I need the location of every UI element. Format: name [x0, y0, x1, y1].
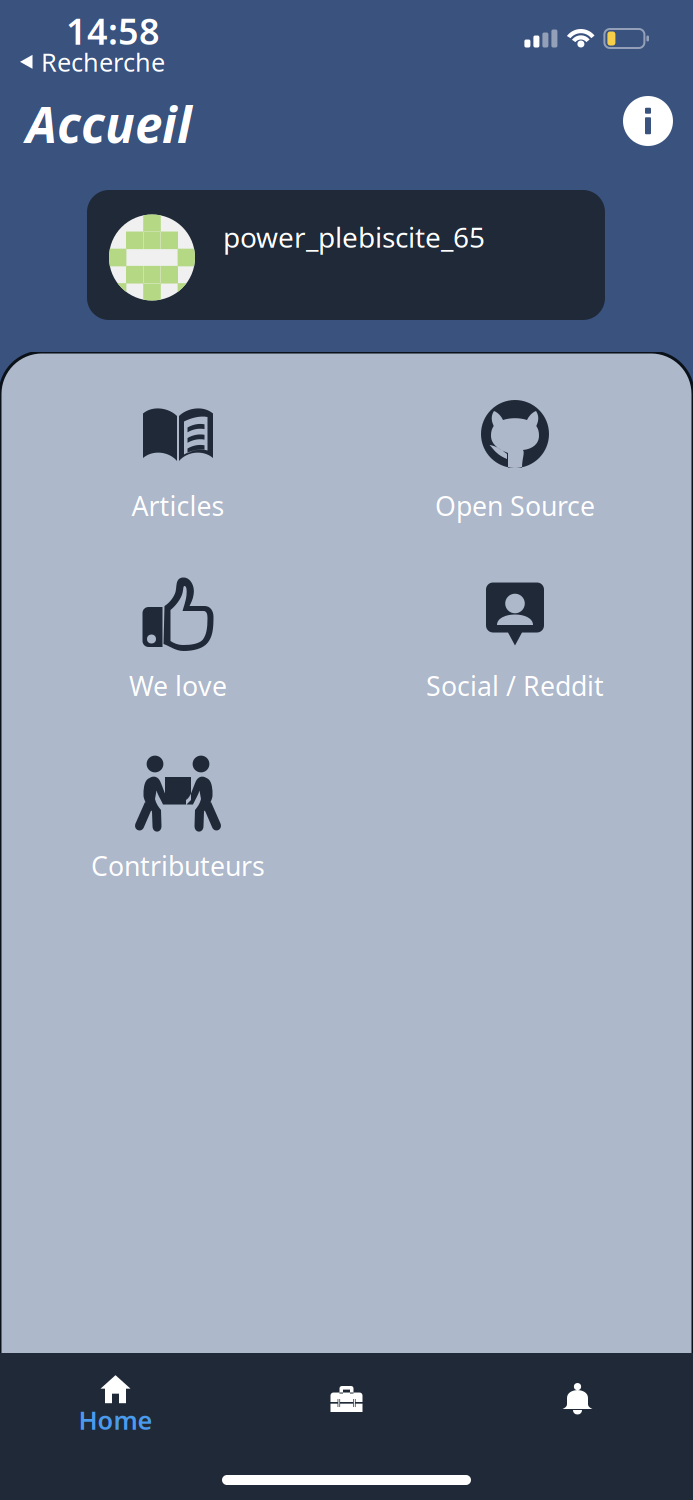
button[interactable]: Social / Reddit	[346, 558, 683, 738]
staticText: Contributeurs	[91, 848, 265, 883]
staticText: Home	[78, 1403, 152, 1437]
button[interactable]: Informations	[617, 90, 679, 152]
button[interactable]: Articles	[9, 378, 346, 558]
staticText: Social / Reddit	[426, 668, 604, 703]
button[interactable]: Home	[0, 1353, 231, 1443]
staticText: We love	[129, 668, 227, 703]
staticText: Recherche	[41, 45, 165, 79]
staticText: Open Source	[435, 488, 595, 523]
button[interactable]: Open Source	[346, 378, 683, 558]
button[interactable]: We love	[9, 558, 346, 738]
staticText: 14:58	[66, 7, 160, 55]
staticText: Articles	[131, 488, 224, 523]
button[interactable]: Notifications	[462, 1353, 693, 1443]
staticText: Accueil	[26, 91, 192, 156]
staticText: power_plebiscite_65	[223, 218, 485, 256]
button[interactable]: Outils	[231, 1353, 462, 1443]
button[interactable]: Contributeurs	[9, 738, 346, 918]
